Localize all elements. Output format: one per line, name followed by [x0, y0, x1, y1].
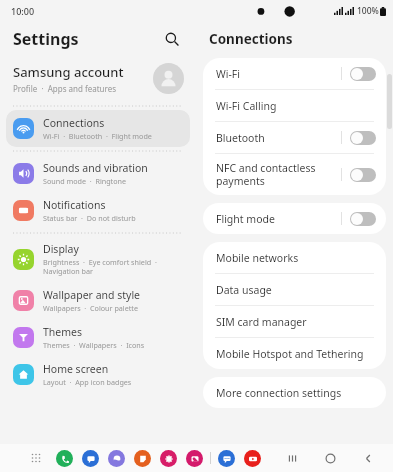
- staticText: Themes: [43, 325, 83, 339]
- button[interactable]: Mobile networks: [203, 242, 386, 273]
- staticText: Home screen: [43, 362, 109, 376]
- staticText: Samsung account: [13, 63, 124, 81]
- staticText: Bluetooth: [216, 131, 265, 145]
- button[interactable]: Wi-Fi Calling: [203, 90, 386, 121]
- button[interactable]: Search: [159, 26, 185, 52]
- button[interactable]: Wi-Fi: [203, 58, 386, 89]
- button[interactable]: Messages: [82, 450, 99, 467]
- button[interactable]: Mobile Hotspot and Tethering: [203, 338, 386, 369]
- staticText: Themes · Wallpapers · Icons: [43, 340, 145, 350]
- button[interactable]: Chat: [218, 450, 235, 467]
- button[interactable]: Data usage: [203, 274, 386, 305]
- button[interactable]: Bluetooth: [203, 122, 386, 153]
- button[interactable]: Home screen: [6, 356, 190, 393]
- button[interactable]: Flight mode switch: [350, 212, 376, 226]
- staticText: SIM card manager: [216, 315, 307, 329]
- button[interactable]: More connection settings: [203, 377, 386, 408]
- button[interactable]: Wallpaper and style: [6, 282, 190, 319]
- staticText: Layout · App icon badges: [43, 377, 132, 387]
- staticText: Mobile Hotspot and Tethering: [216, 347, 364, 361]
- staticText: Mobile networks: [216, 251, 299, 265]
- staticText: Notifications: [43, 198, 106, 212]
- staticText: Sounds and vibration: [43, 161, 148, 175]
- button[interactable]: Themes: [6, 319, 190, 356]
- button[interactable]: Home: [319, 447, 341, 469]
- button[interactable]: SIM card manager: [203, 306, 386, 337]
- button[interactable]: NFC and contactless payments switch: [350, 168, 376, 182]
- button[interactable]: Back: [357, 447, 379, 469]
- staticText: Settings: [13, 28, 79, 50]
- button[interactable]: Recents: [281, 447, 303, 469]
- button[interactable]: Flight mode: [203, 203, 386, 234]
- button[interactable]: Notes: [134, 450, 151, 467]
- staticText: NFC and contactless payments: [216, 161, 316, 188]
- staticText: Wi-Fi: [216, 67, 241, 81]
- button[interactable]: Gallery: [186, 450, 203, 467]
- staticText: Wallpaper and style: [43, 288, 141, 302]
- button[interactable]: YouTube: [244, 450, 261, 467]
- staticText: More connection settings: [216, 386, 342, 400]
- staticText: Wi-Fi · Bluetooth · Flight mode: [43, 131, 152, 141]
- button[interactable]: Phone: [56, 450, 73, 467]
- button[interactable]: Internet: [108, 450, 125, 467]
- staticText: Wi-Fi Calling: [216, 99, 277, 113]
- button[interactable]: Sounds and vibration: [6, 155, 190, 192]
- button[interactable]: All apps: [27, 449, 45, 467]
- button[interactable]: NFC and contactless payments: [203, 154, 386, 195]
- staticText: Connections: [209, 30, 293, 48]
- button[interactable]: Connections: [6, 110, 190, 147]
- staticText: Flight mode: [216, 212, 275, 226]
- staticText: Brightness · Eye comfort shield · Naviga…: [43, 257, 157, 277]
- button[interactable]: Notifications: [6, 192, 190, 229]
- button[interactable]: Wi-Fi switch: [350, 67, 376, 81]
- staticText: Connections: [43, 116, 105, 130]
- staticText: 10:00: [11, 5, 35, 17]
- button[interactable]: Galaxy Store: [160, 450, 177, 467]
- button[interactable]: Samsung account: [0, 55, 196, 102]
- staticText: Sound mode · Ringtone: [43, 176, 127, 186]
- staticText: Data usage: [216, 283, 272, 297]
- staticText: Display: [43, 242, 79, 256]
- button[interactable]: Display: [6, 237, 190, 282]
- button[interactable]: Bluetooth switch: [350, 131, 376, 145]
- staticText: Profile · Apps and features: [13, 83, 117, 94]
- staticText: Wallpapers · Colour palette: [43, 303, 138, 313]
- staticText: Status bar · Do not disturb: [43, 213, 136, 223]
- staticText: 100%: [357, 5, 379, 17]
